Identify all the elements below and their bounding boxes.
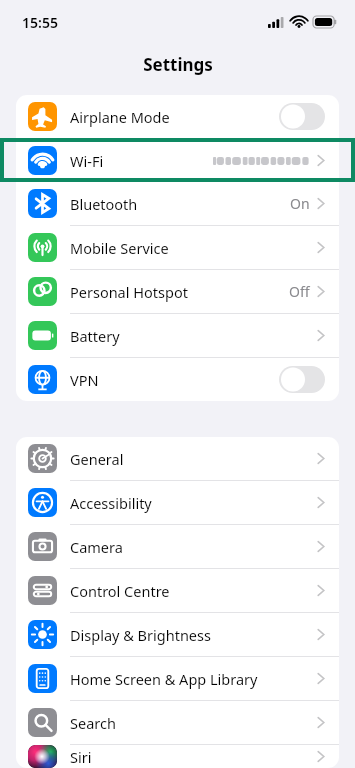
button[interactable]: Personal Hotspot (16, 270, 339, 314)
button[interactable]: Display & Brightness (16, 613, 339, 657)
button[interactable]: Home Screen & App Library (16, 657, 339, 701)
button[interactable]: Mobile Service (16, 226, 339, 270)
button[interactable]: General (16, 437, 339, 481)
staticText: Personal Hotspot (70, 282, 188, 302)
staticText: Camera (70, 537, 123, 557)
staticText: Siri (70, 747, 92, 767)
staticText: On (290, 194, 310, 213)
staticText: Display & Brightness (70, 625, 211, 645)
staticText: VPN (70, 370, 99, 390)
staticText: Search (70, 713, 116, 733)
staticText: Mobile Service (70, 238, 169, 258)
button[interactable]: Control Centre (16, 569, 339, 613)
staticText: Accessibility (70, 493, 152, 513)
button[interactable]: Camera (16, 525, 339, 569)
staticText: Airplane Mode (70, 107, 170, 127)
button[interactable]: VPN (16, 358, 339, 401)
staticText: Bluetooth (70, 194, 138, 214)
staticText: 15:55 (22, 13, 58, 32)
button[interactable]: Wi-Fi (16, 139, 339, 182)
staticText: Off (289, 282, 310, 301)
button[interactable]: Battery (16, 314, 339, 358)
button[interactable]: Search (16, 701, 339, 745)
staticText: Control Centre (70, 581, 170, 601)
button[interactable]: Siri (16, 745, 339, 768)
staticText: Home Screen & App Library (70, 669, 258, 689)
button[interactable]: Airplane Mode (16, 95, 339, 139)
staticText: Settings (143, 53, 213, 76)
staticText: Battery (70, 326, 120, 346)
button[interactable]: Accessibility (16, 481, 339, 525)
staticText: Wi-Fi (70, 151, 104, 171)
button[interactable]: Bluetooth (16, 182, 339, 226)
staticText: General (70, 449, 124, 469)
